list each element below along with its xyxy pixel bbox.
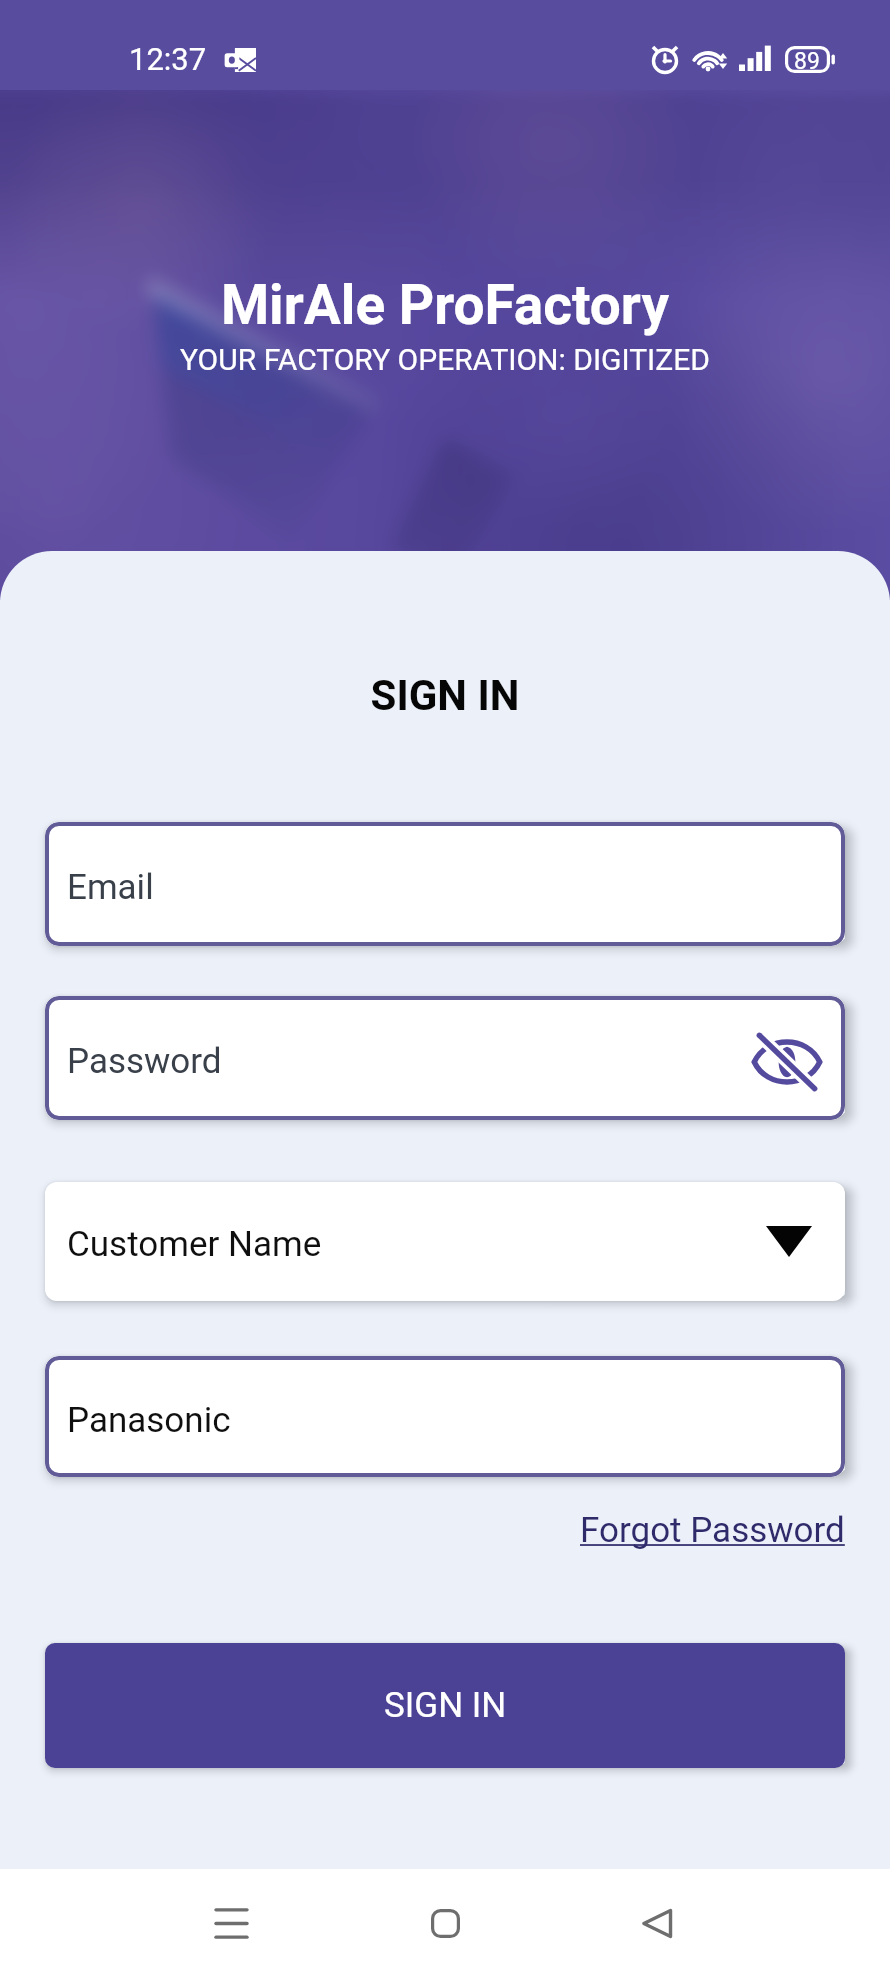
button[interactable]: Toggle password visibility: [745, 1020, 829, 1104]
staticText: Forgot Password: [580, 1510, 845, 1551]
button[interactable]: Customer Name: [45, 1182, 845, 1301]
staticText: 89: [794, 48, 820, 75]
button[interactable]: Home: [365, 1873, 525, 1973]
staticText: Customer Name: [67, 1224, 322, 1265]
button[interactable]: Password: [45, 996, 845, 1120]
button[interactable]: Email: [45, 822, 845, 946]
staticText: Email: [67, 867, 154, 908]
staticText: Panasonic: [67, 1400, 231, 1441]
staticText: Password: [67, 1041, 222, 1082]
button[interactable]: SIGN IN: [45, 1643, 845, 1768]
button[interactable]: Recent apps: [151, 1873, 311, 1973]
button[interactable]: Panasonic: [45, 1356, 845, 1477]
staticText: 12:37: [129, 41, 207, 77]
staticText: YOUR FACTORY OPERATION: DIGITIZED: [0, 342, 890, 377]
staticText: SIGN IN: [384, 1685, 507, 1726]
staticText: MirAle ProFactory: [0, 273, 890, 337]
button[interactable]: Back: [577, 1873, 737, 1973]
staticText: SIGN IN: [0, 671, 890, 720]
button[interactable]: Forgot Password: [580, 1510, 845, 1551]
